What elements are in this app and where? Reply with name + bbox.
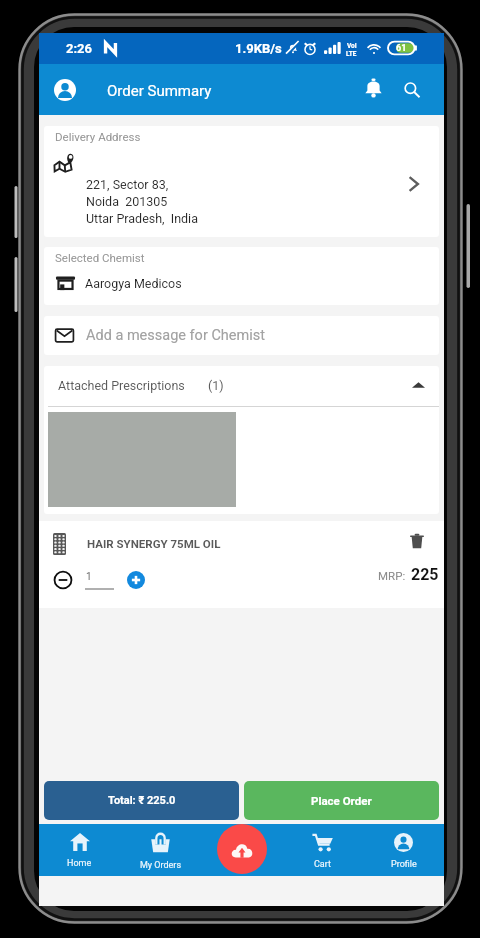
staticText: Cart: [314, 859, 331, 870]
staticText: Place Order: [311, 794, 372, 807]
staticText: (1): [208, 378, 224, 393]
staticText: Delivery Address: [55, 130, 141, 143]
button[interactable]: Profile: [363, 825, 444, 876]
button[interactable]: My Orders: [120, 824, 201, 876]
staticText: 221, Sector 83,: [86, 177, 169, 192]
staticText: 1.9KB/s: [235, 41, 282, 56]
button[interactable]: Place Order: [244, 781, 439, 820]
staticText: Selected Chemist: [55, 251, 145, 264]
staticText: Noida 201305: [86, 194, 168, 209]
button[interactable]: Selected Chemist: [44, 247, 439, 305]
staticText: My Orders: [140, 860, 182, 870]
button[interactable]: Add a message for Chemist: [44, 316, 439, 355]
staticText: 225: [411, 565, 439, 584]
staticText: Profile: [391, 859, 417, 870]
staticText: VoI: [347, 42, 357, 50]
staticText: LTE: [346, 50, 357, 58]
button[interactable]: Decrease quantity: [51, 568, 75, 592]
button[interactable]: Account: [48, 73, 82, 107]
staticText: Home: [67, 858, 92, 869]
button[interactable]: Delivery Address: [44, 126, 439, 237]
staticText: 2:26: [66, 41, 93, 56]
staticText: 61: [396, 43, 407, 54]
staticText: Total: ₹ 225.0: [108, 794, 176, 807]
staticText: MRP:: [378, 569, 406, 582]
button[interactable]: Home: [39, 825, 120, 875]
button[interactable]: Cart: [282, 825, 363, 876]
button[interactable]: Notifications: [357, 72, 389, 104]
staticText: 1: [86, 571, 92, 583]
staticText: Add a message for Chemist: [86, 327, 265, 344]
button[interactable]: Collapse prescriptions: [403, 370, 433, 400]
button[interactable]: Change address: [398, 169, 428, 199]
staticText: Attached Prescriptions: [58, 378, 185, 393]
staticText: Order Summary: [107, 82, 212, 100]
button[interactable]: Increase quantity: [124, 568, 148, 592]
button[interactable]: Upload prescription: [217, 824, 267, 874]
staticText: Uttar Pradesh, India: [86, 211, 198, 226]
staticText: HAIR SYNERGY 75ML OIL: [87, 537, 221, 550]
button[interactable]: Search: [396, 74, 428, 106]
staticText: Aarogya Medicos: [85, 276, 182, 291]
button[interactable]: Total: ₹ 225.0: [44, 781, 239, 820]
button[interactable]: Delete item: [402, 526, 432, 556]
